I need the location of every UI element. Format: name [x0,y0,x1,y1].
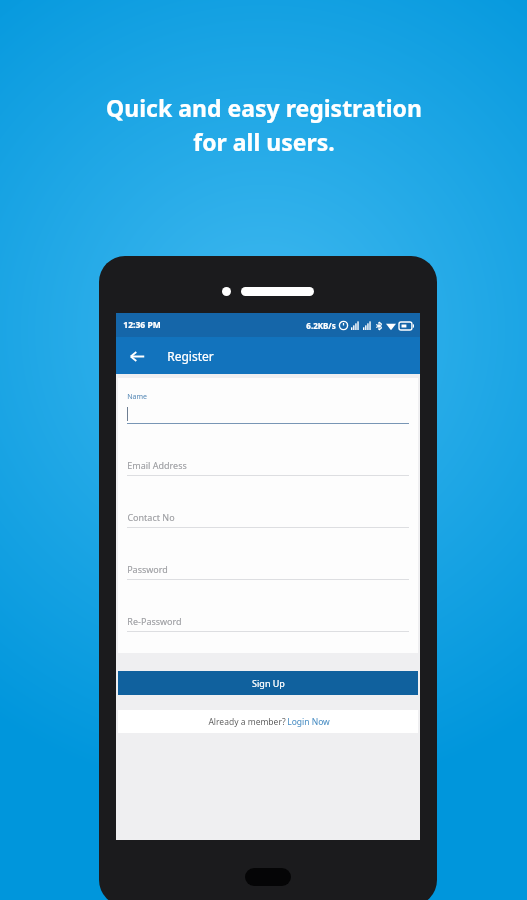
staticText: Register [167,348,214,364]
button[interactable]: Password [127,563,409,580]
button[interactable]: Re-Password [127,615,409,632]
staticText: Email Address [127,459,187,471]
staticText: for all users. [193,126,335,157]
button[interactable]: Sign Up [118,671,418,695]
staticText: Name [127,392,147,402]
staticText: 6.2KB/s [306,320,336,331]
button[interactable]: Already a member? [118,710,418,733]
staticText: Login Now [287,716,330,728]
staticText: Sign Up [252,677,285,689]
button[interactable]: Name [127,392,409,424]
staticText: 12:36 PM [123,319,161,331]
button[interactable]: Back [124,343,150,369]
staticText: Contact No [127,511,175,523]
button[interactable]: Email Address [127,459,409,476]
staticText: Already a member? [207,716,287,728]
staticText: Password [127,563,168,575]
button[interactable]: Contact No [127,511,409,528]
staticText: Quick and easy registration [106,92,422,123]
staticText: Re-Password [127,615,182,627]
